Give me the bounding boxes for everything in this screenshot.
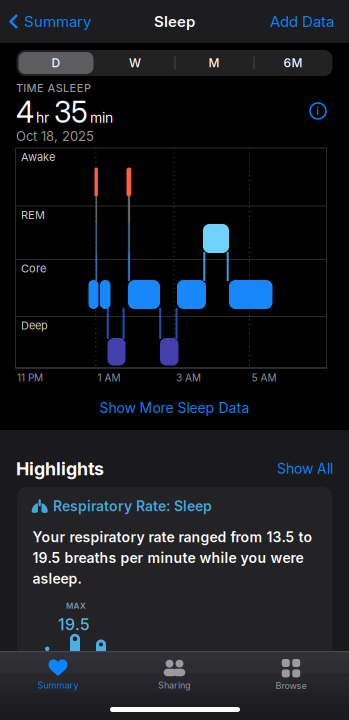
staticText: i [316,105,319,117]
staticText: min [90,109,113,126]
button[interactable]: D [16,50,95,76]
button[interactable]: Summary [0,13,91,30]
staticText: 6M [283,56,302,70]
staticText: Add Data [270,13,334,30]
staticText: Highlights [16,458,104,479]
button[interactable]: Show More Sleep Data [0,398,349,418]
staticText: 5 AM [251,372,276,384]
staticText: W [129,56,141,70]
button[interactable]: Add Data [270,13,349,30]
button[interactable]: Browse [233,654,349,696]
button[interactable]: W [95,50,174,76]
staticText: Show All [277,460,333,477]
staticText: 11 PM [17,372,43,384]
staticText: Respiratory Rate: Sleep [53,498,212,514]
staticText: Awake [21,150,55,163]
staticText: 1 AM [97,372,120,384]
button[interactable]: Respiratory Rate: Sleep [17,487,332,677]
staticText: hr [36,109,49,126]
staticText: Sleep [154,13,195,30]
staticText: Your respiratory rate ranged from 13.5 t… [32,529,312,587]
staticText: TIME ASLEEP [16,81,91,94]
staticText: 4 [16,95,34,129]
staticText: 35 [54,95,88,129]
button[interactable]: Show All [277,460,333,477]
button[interactable]: Summary [0,654,116,696]
staticText: D [51,56,60,70]
button[interactable]: Sharing [116,654,233,696]
staticText: Deep [21,319,48,332]
button[interactable]: i [308,101,328,121]
button[interactable]: 6M [253,50,332,76]
staticText: Summary [37,680,78,690]
button[interactable]: M [174,50,253,76]
staticText: M [208,56,219,70]
staticText: Sharing [158,680,191,690]
staticText: 3 AM [176,372,201,384]
staticText: Show More Sleep Data [99,400,249,416]
staticText: Summary [24,13,91,30]
staticText: MAX [66,601,86,610]
staticText: Oct 18, 2025 [16,128,94,144]
staticText: Core [21,262,46,275]
staticText: 19.5 [58,615,90,634]
staticText: REM [21,208,45,221]
staticText: Browse [275,680,306,691]
